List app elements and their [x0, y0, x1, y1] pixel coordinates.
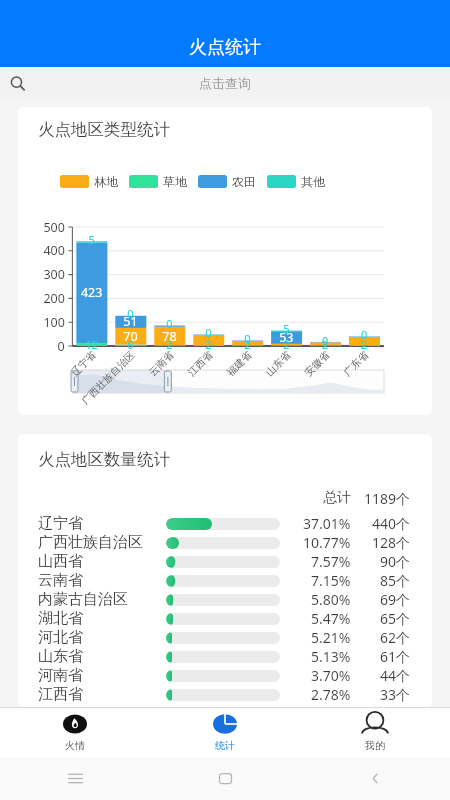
staticText: 统计 [215, 739, 235, 752]
button[interactable]: 湖北省 [18, 609, 432, 628]
button[interactable]: 统计 [150, 708, 300, 757]
button[interactable]: 河南省 [18, 666, 432, 685]
staticText: 草地 [163, 174, 187, 189]
button[interactable]: 辽宁省 [18, 514, 432, 533]
button[interactable]: 河北省 [18, 628, 432, 647]
staticText: 山东省 [38, 647, 83, 666]
staticText: 2.78% [311, 685, 351, 704]
staticText: 5.47% [311, 609, 351, 628]
staticText: 7.57% [311, 552, 351, 571]
button[interactable]: 内蒙古自治区 [18, 590, 432, 609]
staticText: 3.70% [311, 666, 351, 685]
staticText: 85个 [380, 571, 411, 590]
staticText: 广西壮族自治区 [38, 533, 143, 552]
staticText: 云南省 [38, 571, 83, 590]
staticText: 5.13% [311, 647, 351, 666]
staticText: 山西省 [38, 552, 83, 571]
button[interactable]: 江西省 [18, 685, 432, 704]
staticText: 江西省 [38, 685, 83, 704]
staticText: 河南省 [38, 666, 83, 685]
staticText: 440个 [372, 514, 411, 533]
staticText: 7.15% [311, 571, 351, 590]
staticText: 点击查询 [199, 75, 251, 91]
button[interactable]: 我的 [300, 708, 450, 757]
button[interactable]: 云南省 [18, 571, 432, 590]
staticText: 内蒙古自治区 [38, 590, 128, 609]
staticText: 33个 [380, 685, 411, 704]
staticText: 62个 [380, 628, 411, 647]
staticText: 65个 [380, 609, 411, 628]
staticText: 火点地区数量统计 [38, 449, 170, 470]
staticText: 1189个 [364, 489, 411, 508]
staticText: 44个 [380, 666, 411, 685]
staticText: 辽宁省 [38, 514, 83, 533]
staticText: 火点统计 [189, 36, 261, 59]
staticText: 128个 [372, 533, 411, 552]
staticText: 火点地区类型统计 [38, 119, 170, 140]
button[interactable]: 火情 [0, 708, 150, 757]
staticText: 61个 [380, 647, 411, 666]
staticText: 林地 [94, 174, 118, 189]
button[interactable]: 山西省 [18, 552, 432, 571]
staticText: 火情 [65, 739, 85, 752]
staticText: 90个 [380, 552, 411, 571]
button[interactable]: 广西壮族自治区 [18, 533, 432, 552]
button[interactable]: Back [300, 757, 450, 800]
button[interactable]: 点击查询 [0, 67, 450, 99]
staticText: 河北省 [38, 628, 83, 647]
staticText: 我的 [365, 739, 385, 752]
staticText: 37.01% [303, 514, 351, 533]
staticText: 湖北省 [38, 609, 83, 628]
staticText: 其他 [301, 174, 325, 189]
staticText: 10.77% [303, 533, 351, 552]
button[interactable]: 山东省 [18, 647, 432, 666]
staticText: 农田 [232, 174, 256, 189]
button[interactable]: Home [150, 757, 300, 800]
staticText: 5.80% [311, 590, 351, 609]
staticText: 5.21% [311, 628, 351, 647]
button[interactable]: Menu [0, 757, 150, 800]
staticText: 69个 [380, 590, 411, 609]
staticText: 总计 [323, 489, 351, 507]
